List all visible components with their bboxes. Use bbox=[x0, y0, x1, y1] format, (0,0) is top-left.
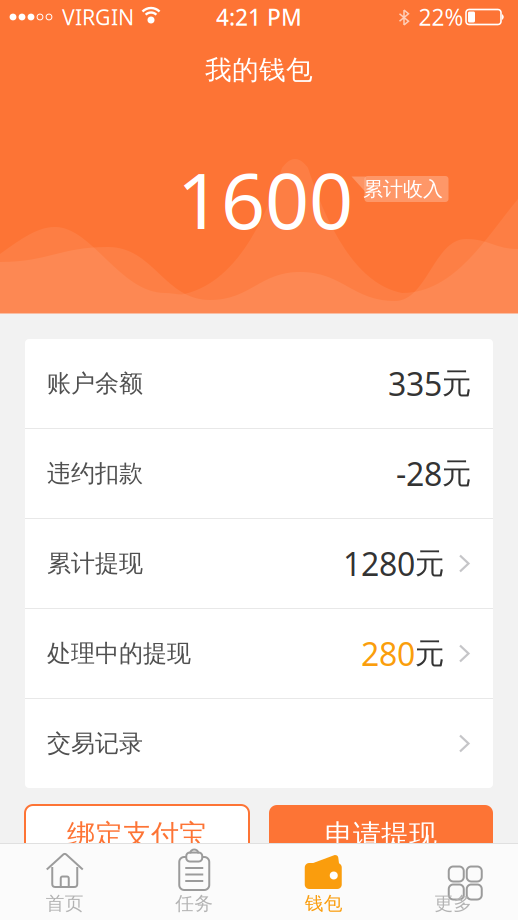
button[interactable]: 违约扣款 bbox=[25, 429, 493, 518]
button[interactable]: 累计提现 bbox=[25, 519, 493, 608]
staticText: 335 bbox=[388, 362, 442, 405]
staticText: 元 bbox=[442, 455, 471, 491]
staticText: 元 bbox=[415, 545, 444, 581]
staticText: 4:21 PM bbox=[216, 2, 302, 32]
staticText: 账户余额 bbox=[47, 369, 143, 398]
staticText: 任务 bbox=[175, 892, 213, 915]
button[interactable]: 账户余额 bbox=[25, 339, 493, 428]
staticText: 首页 bbox=[46, 892, 84, 915]
staticText: 处理中的提现 bbox=[47, 639, 191, 668]
staticText: 1600 bbox=[177, 148, 353, 250]
button[interactable]: 处理中的提现 bbox=[25, 609, 493, 698]
button[interactable]: 绑定支付宝 bbox=[25, 805, 249, 865]
button[interactable]: 交易记录 bbox=[25, 699, 493, 788]
button[interactable]: 钱包 bbox=[259, 844, 388, 915]
staticText: VIRGIN bbox=[62, 3, 134, 31]
staticText: 累计提现 bbox=[47, 549, 143, 578]
staticText: 元 bbox=[442, 365, 471, 401]
staticText: 申请提现 bbox=[325, 818, 437, 852]
staticText: 1280 bbox=[343, 542, 415, 585]
button[interactable]: 任务 bbox=[129, 844, 259, 915]
staticText: 我的钱包 bbox=[205, 54, 313, 86]
staticText: 绑定支付宝 bbox=[67, 818, 207, 852]
staticText: 违约扣款 bbox=[47, 459, 143, 488]
staticText: 280 bbox=[361, 632, 415, 675]
staticText: 累计收入 bbox=[363, 177, 443, 201]
staticText: 更多 bbox=[434, 892, 472, 915]
button[interactable]: 申请提现 bbox=[269, 805, 493, 865]
staticText: 22% bbox=[418, 2, 463, 32]
button[interactable]: 首页 bbox=[0, 844, 129, 915]
staticText: 钱包 bbox=[305, 892, 343, 915]
staticText: 元 bbox=[415, 635, 444, 671]
staticText: 交易记录 bbox=[47, 729, 143, 758]
staticText: -28 bbox=[396, 452, 442, 495]
button[interactable]: 更多 bbox=[388, 844, 518, 915]
